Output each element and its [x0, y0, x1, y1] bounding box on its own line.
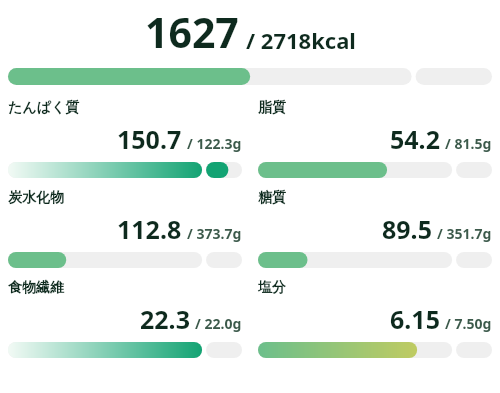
- staticText: 6.15: [390, 302, 440, 336]
- staticText: 食物繊維: [8, 279, 64, 297]
- staticText: 22.3: [140, 302, 190, 336]
- button[interactable]: たんぱく質: [0, 99, 250, 178]
- staticText: / 22.0g: [195, 314, 242, 333]
- other: Progress: [258, 162, 492, 178]
- staticText: 150.7: [117, 122, 182, 156]
- staticText: / 2718kcal: [246, 25, 356, 55]
- staticText: 炭水化物: [8, 189, 64, 207]
- staticText: 塩分: [258, 279, 286, 297]
- staticText: / 351.7g: [437, 224, 492, 243]
- button[interactable]: 炭水化物: [0, 189, 250, 268]
- button[interactable]: 脂質: [250, 99, 500, 178]
- staticText: 1627: [145, 4, 239, 60]
- staticText: たんぱく質: [8, 99, 80, 117]
- other: Progress: [8, 68, 492, 85]
- staticText: / 122.3g: [187, 134, 242, 153]
- other: Progress: [8, 162, 242, 178]
- other: Progress: [258, 342, 492, 358]
- staticText: / 81.5g: [445, 134, 492, 153]
- button[interactable]: 食物繊維: [0, 279, 250, 358]
- staticText: 112.8: [117, 212, 182, 246]
- button[interactable]: 糖質: [250, 189, 500, 268]
- staticText: / 373.7g: [187, 224, 242, 243]
- staticText: / 7.50g: [445, 314, 492, 333]
- other: Progress: [258, 252, 492, 268]
- staticText: 89.5: [382, 212, 432, 246]
- button[interactable]: 1627: [0, 0, 500, 60]
- staticText: 脂質: [258, 99, 286, 117]
- other: Progress: [8, 252, 242, 268]
- button[interactable]: 塩分: [250, 279, 500, 358]
- other: Progress: [8, 342, 242, 358]
- staticText: 54.2: [390, 122, 440, 156]
- staticText: 糖質: [258, 189, 286, 207]
